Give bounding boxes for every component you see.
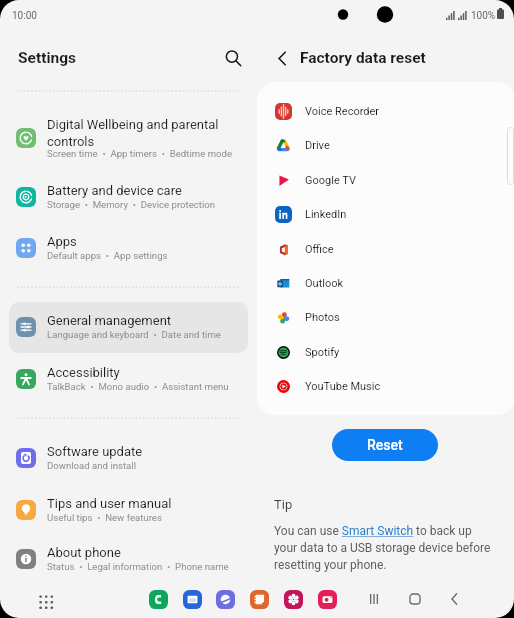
button[interactable]: NavBack <box>443 588 465 610</box>
button[interactable]: flower <box>284 590 303 609</box>
staticText: Accessibility <box>47 365 248 380</box>
staticText: Digital Wellbeing and parental controls <box>47 117 248 150</box>
staticText: About phone <box>47 545 248 560</box>
button[interactable]: Accessibility <box>9 354 248 405</box>
button[interactable]: Recents <box>363 588 385 610</box>
button[interactable]: Home <box>404 588 426 610</box>
button[interactable]: Digital Wellbeing and parental controls <box>9 107 248 169</box>
button[interactable]: Battery and device care <box>9 172 248 223</box>
button[interactable]: notes <box>250 590 269 609</box>
staticText: Reset <box>367 437 403 453</box>
staticText: Outlook <box>305 277 344 290</box>
staticText: Screen time • App timers • Bedtime mode <box>47 148 248 159</box>
staticText: You can use Smart Switch to back up your… <box>274 524 496 572</box>
staticText: Apps <box>47 234 248 249</box>
staticText: Office <box>305 243 334 256</box>
button[interactable]: Drive <box>257 128 514 162</box>
staticText: Storage • Memory • Device protection <box>47 199 248 210</box>
staticText: Drive <box>305 139 330 152</box>
staticText: Battery and device care <box>47 183 248 198</box>
button[interactable]: YouTube Music <box>257 369 514 403</box>
button[interactable]: About phone <box>9 534 248 585</box>
staticText: LinkedIn <box>305 208 347 221</box>
button[interactable]: msg <box>183 590 202 609</box>
staticText: TalkBack • Mono audio • Assistant menu <box>47 381 248 392</box>
button[interactable]: browser <box>216 590 235 609</box>
staticText: Settings <box>18 49 77 67</box>
button[interactable]: Spotify <box>257 335 514 369</box>
staticText: 100% <box>471 10 496 22</box>
staticText: Google TV <box>305 174 356 187</box>
staticText: Language and keyboard • Date and time <box>47 329 248 340</box>
staticText: Software update <box>47 444 248 459</box>
button[interactable]: Outlook <box>257 266 514 300</box>
staticText: Voice Recorder <box>305 105 380 118</box>
button[interactable]: General management <box>9 302 248 353</box>
staticText: 10:00 <box>12 10 37 22</box>
button[interactable]: Apps <box>9 223 248 274</box>
staticText: YouTube Music <box>305 380 381 393</box>
staticText: General management <box>47 313 248 328</box>
button[interactable]: Apps <box>33 589 57 613</box>
button[interactable]: Software update <box>9 433 248 484</box>
staticText: Download and install <box>47 460 248 471</box>
button[interactable]: Back <box>268 44 296 72</box>
button[interactable]: Reset <box>332 429 438 461</box>
staticText: Useful tips • New features <box>47 512 248 523</box>
staticText: Tips and user manual <box>47 496 248 511</box>
staticText: Tip <box>274 497 293 512</box>
button[interactable]: Google TV <box>257 163 514 197</box>
staticText: Status • Legal information • Phone name <box>47 561 248 572</box>
staticText: Factory data reset <box>300 49 426 67</box>
button[interactable]: Photos <box>257 300 514 334</box>
button[interactable]: Office <box>257 232 514 266</box>
button[interactable]: Voice Recorder <box>257 94 514 128</box>
button[interactable]: LinkedIn <box>257 197 514 231</box>
button[interactable]: camera <box>318 590 337 609</box>
staticText: Spotify <box>305 346 340 359</box>
button[interactable]: phone <box>149 590 168 609</box>
button[interactable]: Search <box>219 44 247 72</box>
button[interactable]: Tips and user manual <box>9 485 248 536</box>
staticText: Default apps • App settings <box>47 250 248 261</box>
staticText: Photos <box>305 311 340 324</box>
